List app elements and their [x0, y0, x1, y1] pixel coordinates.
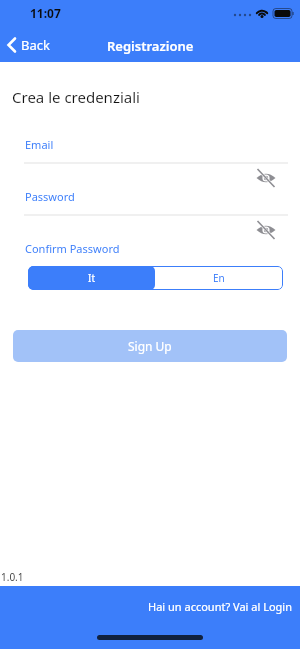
- staticText: Registrazione: [107, 37, 194, 55]
- button[interactable]: Back: [6, 33, 50, 57]
- button[interactable]: En: [155, 266, 283, 290]
- staticText: Confirm Password: [25, 241, 120, 256]
- staticText: En: [213, 271, 225, 285]
- button[interactable]: Hai un account? Vai al Login: [148, 599, 292, 614]
- button[interactable]: It: [28, 266, 155, 290]
- staticText: Password: [25, 189, 75, 204]
- staticText: 1.0.1: [1, 570, 24, 584]
- staticText: It: [88, 271, 95, 285]
- staticText: Back: [21, 36, 50, 54]
- staticText: Sign Up: [128, 338, 172, 354]
- button[interactable]: Sign Up: [13, 330, 287, 362]
- staticText: 11:07: [30, 5, 61, 21]
- staticText: Email: [25, 137, 54, 152]
- staticText: Crea le credenziali: [12, 87, 140, 107]
